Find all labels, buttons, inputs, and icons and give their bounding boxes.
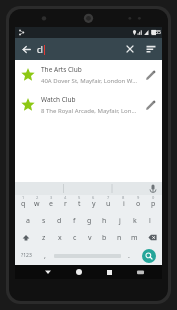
button[interactable]: ?123 <box>15 246 38 265</box>
button[interactable]: 6 <box>86 195 101 212</box>
button[interactable]: The Arts Club <box>15 60 162 90</box>
button[interactable]: 3 <box>44 195 58 212</box>
staticText: f <box>73 216 76 226</box>
staticText: 7 <box>107 195 110 200</box>
button[interactable]: Home <box>63 265 94 279</box>
staticText: ?123 <box>21 252 32 259</box>
button[interactable]: d <box>52 212 67 229</box>
button[interactable]: Edit <box>138 60 162 90</box>
button[interactable]: 2 <box>30 195 44 212</box>
staticText: i <box>123 199 125 209</box>
staticText: 8 <box>122 195 125 200</box>
button[interactable]: g <box>82 212 97 229</box>
staticText: 2 <box>36 195 39 200</box>
button[interactable]: m <box>127 229 142 246</box>
staticText: b <box>102 233 107 243</box>
button[interactable]: k <box>127 212 142 229</box>
button[interactable]: x <box>52 229 67 246</box>
staticText: j <box>119 216 121 226</box>
staticText: The Arts Club <box>41 65 82 74</box>
button[interactable]: 8 <box>116 195 131 212</box>
button[interactable]: Backspace <box>142 229 162 246</box>
button[interactable]: 1 <box>16 195 30 212</box>
button[interactable]: s <box>36 212 52 229</box>
button[interactable]: j <box>112 212 127 229</box>
staticText: 9 <box>137 195 140 200</box>
staticText: 4 <box>64 195 67 200</box>
staticText: cl <box>37 44 43 55</box>
button[interactable]: Hide keyboard <box>125 265 156 279</box>
staticText: . <box>128 251 130 261</box>
button[interactable]: h <box>97 212 112 229</box>
staticText: c <box>73 233 77 243</box>
staticText: 5 <box>78 195 81 200</box>
button[interactable]: v <box>82 229 97 246</box>
button[interactable]: Recents <box>94 265 125 279</box>
staticText: 0 <box>152 195 155 200</box>
staticText: g <box>87 216 92 226</box>
button[interactable]: b <box>97 229 112 246</box>
staticText: l <box>149 216 151 226</box>
staticText: e <box>49 199 53 209</box>
staticText: h <box>102 216 107 226</box>
button[interactable]: Back <box>32 265 63 279</box>
button[interactable]: c <box>67 229 82 246</box>
button[interactable]: a <box>20 212 36 229</box>
button[interactable]: Clear <box>120 38 140 60</box>
staticText: m <box>131 233 138 243</box>
staticText: n <box>117 233 122 243</box>
staticText: d <box>57 216 62 226</box>
button[interactable]: . <box>122 246 136 265</box>
staticText: 6 <box>92 195 95 200</box>
staticText: a <box>26 216 30 226</box>
staticText: 8:35 <box>151 29 161 36</box>
button[interactable]: 7 <box>101 195 116 212</box>
button[interactable]: Watch Club <box>15 90 162 120</box>
staticText: 3 <box>50 195 53 200</box>
staticText: w <box>34 199 40 209</box>
staticText: t <box>78 199 81 209</box>
staticText: p <box>151 199 156 209</box>
staticText: y <box>92 199 96 209</box>
button[interactable]: 9 <box>131 195 146 212</box>
button[interactable]: Edit <box>138 90 162 120</box>
button[interactable]: Search <box>136 246 162 265</box>
button[interactable]: Sort <box>140 38 162 60</box>
button[interactable]: z <box>36 229 52 246</box>
staticText: r <box>64 199 67 209</box>
staticText: k <box>133 216 137 226</box>
button[interactable]: l <box>142 212 157 229</box>
staticText: 40A Dover St, Mayfair, London W… <box>41 77 137 85</box>
staticText: Watch Club <box>41 95 76 104</box>
staticText: s <box>42 216 46 226</box>
button[interactable]: f <box>67 212 82 229</box>
staticText: 8 The Royal Arcade, Mayfair, Lon… <box>41 107 137 115</box>
staticText: v <box>88 233 92 243</box>
button[interactable]: Shift <box>15 229 36 246</box>
staticText: o <box>136 199 141 209</box>
button[interactable]: , <box>38 246 52 265</box>
button[interactable] <box>52 246 122 265</box>
staticText: , <box>44 251 46 261</box>
button[interactable]: Back <box>15 38 37 60</box>
button[interactable]: 4 <box>58 195 72 212</box>
staticText: u <box>106 199 111 209</box>
staticText: q <box>21 199 26 209</box>
staticText: z <box>42 233 46 243</box>
button[interactable]: 5 <box>72 195 86 212</box>
staticText: x <box>58 233 62 243</box>
staticText: 1 <box>22 195 25 200</box>
button[interactable]: n <box>112 229 127 246</box>
button[interactable]: 0 <box>146 195 161 212</box>
